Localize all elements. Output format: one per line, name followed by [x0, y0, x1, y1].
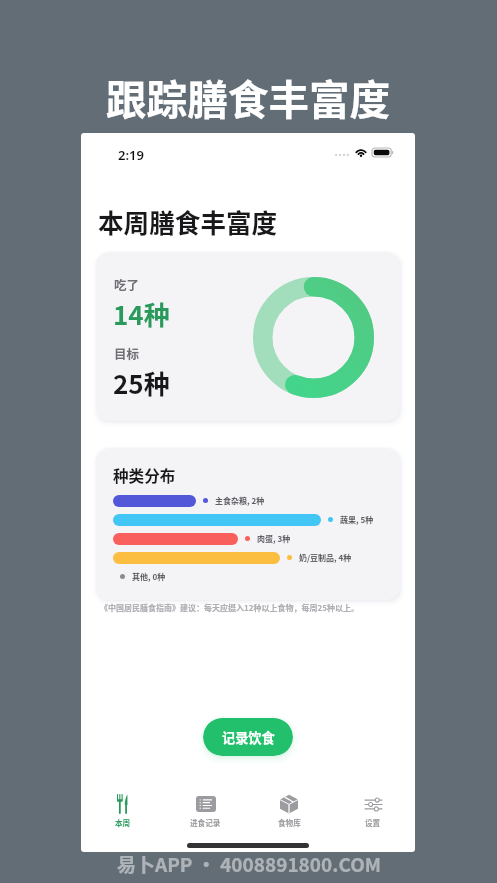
staticText: 奶/豆制品, 4种	[299, 552, 352, 564]
staticText: 种类分布	[113, 464, 176, 487]
staticText: 本周膳食丰富度	[98, 203, 278, 240]
staticText: 易卜APP • 4008891800.COM	[117, 850, 381, 878]
staticText: 本周	[115, 817, 131, 828]
staticText: 跟踪膳食丰富度	[106, 68, 391, 127]
staticText: 吃了	[114, 275, 140, 293]
staticText: 记录饮食	[222, 728, 275, 747]
staticText: 2:19	[118, 146, 144, 164]
other: 食物库	[280, 794, 298, 814]
staticText: 进食记录	[190, 817, 221, 828]
staticText: 食物库	[278, 817, 301, 828]
staticText: 主食杂粮, 2种	[215, 495, 265, 507]
button[interactable]: 设置	[331, 788, 415, 834]
button[interactable]: 进食记录	[164, 788, 247, 834]
other: 本周	[116, 794, 129, 814]
staticText: 《中国居民膳食指南》建议：每天应摄入12种以上食物，每周25种以上。	[100, 602, 359, 614]
staticText: 肉蛋, 3种	[257, 533, 291, 545]
button[interactable]: 记录饮食	[203, 718, 293, 756]
staticText: 蔬果, 5种	[340, 514, 374, 526]
staticText: 设置	[365, 817, 381, 828]
other: 进食记录	[196, 796, 216, 812]
staticText: 其他, 0种	[132, 571, 166, 583]
staticText: 目标	[114, 344, 140, 362]
button[interactable]: 本周	[81, 788, 164, 834]
button[interactable]: 食物库	[247, 788, 331, 834]
staticText: 14种	[113, 295, 170, 333]
other: 设置	[365, 798, 382, 811]
staticText: 25种	[113, 364, 170, 402]
